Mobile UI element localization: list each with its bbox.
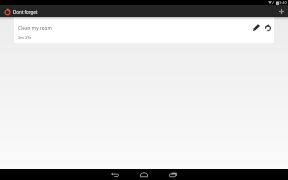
button[interactable]: Clean my room: [14, 17, 274, 43]
staticText: Clean my room: [18, 25, 52, 31]
staticText: Dont forget: [13, 9, 38, 15]
button[interactable]: Back: [106, 169, 124, 180]
button[interactable]: Recents: [164, 169, 182, 180]
button[interactable]: Restart: [261, 21, 274, 34]
staticText: 3:40: [279, 0, 287, 5]
staticText: 3m 29s: [18, 35, 32, 40]
button[interactable]: Edit: [250, 21, 263, 34]
button[interactable]: Home: [135, 169, 153, 180]
button[interactable]: Add task: [275, 5, 287, 17]
